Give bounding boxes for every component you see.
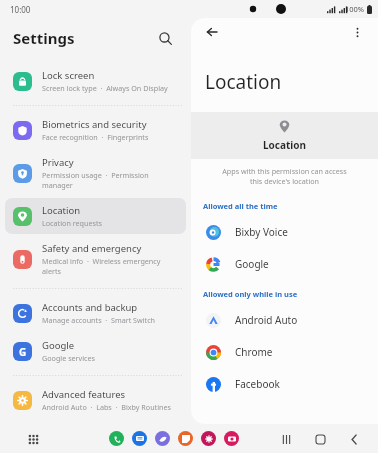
staticText: Face recognition · Fingerprints — [42, 132, 149, 142]
button[interactable]: Messages — [132, 431, 147, 446]
staticText: Facebook — [235, 377, 280, 391]
staticText: Lock screen — [42, 69, 95, 82]
staticText: Medical info · Wireless emergency alerts — [42, 256, 178, 276]
staticText: Android Auto — [235, 313, 298, 327]
staticText: Android Auto · Labs · Bixby Routines — [42, 402, 172, 412]
staticText: G — [19, 345, 27, 359]
button[interactable]: Advanced features — [5, 382, 186, 418]
button[interactable]: Lock screen — [5, 63, 186, 99]
staticText: Google services — [42, 353, 96, 363]
staticText: Location — [263, 138, 307, 152]
staticText: Google — [235, 257, 269, 271]
button[interactable]: Privacy — [5, 150, 186, 196]
button[interactable]: Back — [344, 429, 364, 449]
button[interactable]: Biometrics and security — [5, 112, 186, 148]
staticText: Apps with this permission can access thi… — [203, 166, 366, 186]
button[interactable]: Search — [152, 25, 178, 51]
staticText: Manage accounts · Smart Switch — [42, 315, 156, 325]
button[interactable]: Phone — [109, 431, 124, 446]
button[interactable]: G — [5, 333, 186, 369]
staticText: Chrome — [235, 345, 273, 359]
staticText: Advanced features — [42, 388, 126, 401]
staticText: Google — [42, 339, 75, 352]
button[interactable]: Chrome — [191, 336, 378, 368]
button[interactable]: Internet — [155, 431, 170, 446]
staticText: Biometrics and security — [42, 118, 147, 131]
staticText: Privacy — [42, 156, 74, 169]
staticText: Allowed all the time — [203, 201, 278, 211]
button[interactable]: Notes — [178, 431, 193, 446]
staticText: Location — [205, 69, 282, 95]
button[interactable]: Camera — [224, 431, 239, 446]
staticText: Bixby Voice — [235, 225, 288, 239]
staticText: 100% — [345, 4, 365, 14]
button[interactable]: Android Auto — [191, 304, 378, 336]
button[interactable]: Accounts and backup — [5, 295, 186, 331]
button[interactable]: Home — [310, 429, 330, 449]
staticText: Location requests — [42, 218, 102, 228]
button[interactable]: Bixby Voice — [191, 216, 378, 248]
staticText: Accounts and backup — [42, 301, 138, 314]
button[interactable]: Facebook — [191, 368, 378, 400]
staticText: Screen lock type · Always On Display — [42, 83, 168, 93]
button[interactable]: Back — [201, 21, 223, 43]
staticText: Allowed only while in use — [203, 289, 298, 299]
button[interactable]: Google — [191, 248, 378, 280]
button[interactable]: Apps — [24, 430, 42, 448]
button[interactable]: More options — [346, 21, 368, 43]
staticText: 10:00 — [10, 4, 31, 15]
button[interactable]: Galaxy Store — [201, 431, 216, 446]
staticText: Safety and emergency — [42, 242, 142, 255]
staticText: Permission usage · Permission manager — [42, 170, 178, 190]
button[interactable]: Recents — [276, 429, 296, 449]
staticText: Settings — [13, 28, 75, 48]
button[interactable]: Safety and emergency — [5, 236, 186, 282]
button[interactable]: Location — [5, 198, 186, 234]
staticText: Location — [42, 204, 81, 217]
